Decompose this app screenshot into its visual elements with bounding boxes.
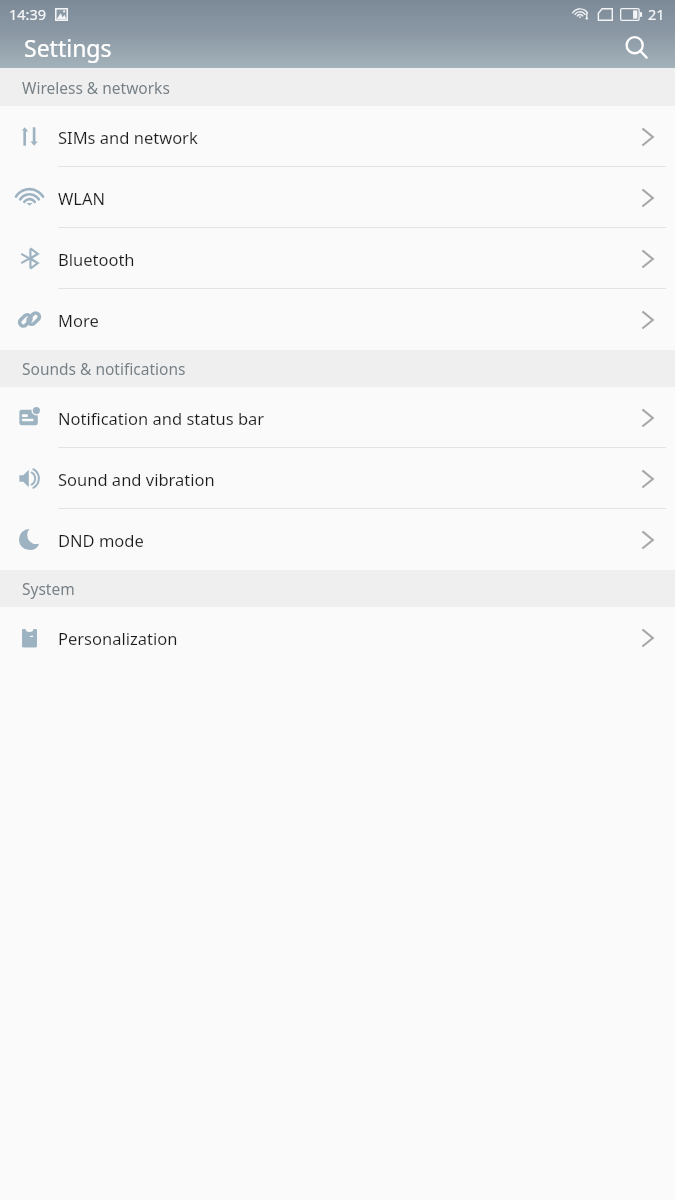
staticText: Wireless & networks	[22, 77, 170, 98]
staticText: Settings	[24, 32, 112, 63]
button[interactable]: Bluetooth	[0, 228, 675, 289]
staticText: DND mode	[58, 529, 620, 551]
staticText: More	[58, 309, 620, 331]
staticText: WLAN	[58, 187, 620, 209]
button[interactable]: Personalization	[0, 607, 675, 668]
staticText: Sounds & notifications	[22, 358, 186, 379]
staticText: System	[22, 578, 75, 599]
button[interactable]: More	[0, 289, 675, 350]
button[interactable]: Search	[614, 27, 658, 68]
button[interactable]: Sound and vibration	[0, 448, 675, 509]
staticText: Personalization	[58, 627, 620, 649]
staticText: Notification and status bar	[58, 407, 620, 429]
button[interactable]: DND mode	[0, 509, 675, 570]
staticText: Sound and vibration	[58, 468, 620, 490]
button[interactable]: Notification and status bar	[0, 387, 675, 448]
staticText: 14:39	[9, 4, 47, 24]
staticText: 21	[648, 4, 665, 24]
button[interactable]: WLAN	[0, 167, 675, 228]
button[interactable]: SIMs and network	[0, 106, 675, 167]
staticText: SIMs and network	[58, 126, 620, 148]
staticText: Bluetooth	[58, 248, 620, 270]
